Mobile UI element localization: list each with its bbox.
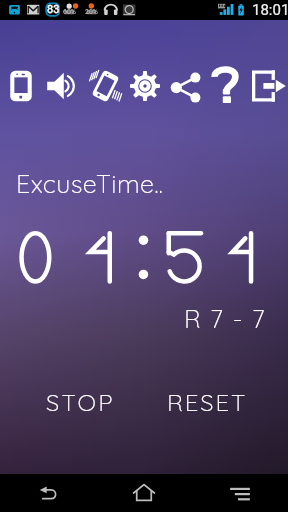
button[interactable]: Recents (192, 474, 288, 512)
staticText: 20% (85, 8, 98, 16)
button[interactable]: Ringer mode (0, 66, 42, 106)
button[interactable]: Volume (42, 66, 83, 106)
staticText: 83 (47, 3, 60, 16)
button[interactable]: Share (165, 66, 206, 106)
staticText: STOP (46, 387, 115, 417)
button[interactable]: Vibrate (83, 66, 124, 106)
button[interactable]: Settings (124, 66, 165, 106)
staticText: 18:01 (252, 1, 288, 19)
staticText: ExcuseTime.. (16, 168, 164, 199)
staticText: R 7 - 7 (184, 303, 267, 334)
button[interactable]: Help (206, 66, 247, 106)
button[interactable]: Home (96, 474, 192, 512)
button[interactable]: Exit (247, 66, 288, 106)
staticText: RESET (167, 387, 248, 417)
button[interactable]: RESET (165, 385, 250, 419)
button[interactable]: STOP (40, 385, 120, 419)
button[interactable]: Back (0, 474, 96, 512)
staticText: 60% (63, 8, 76, 16)
